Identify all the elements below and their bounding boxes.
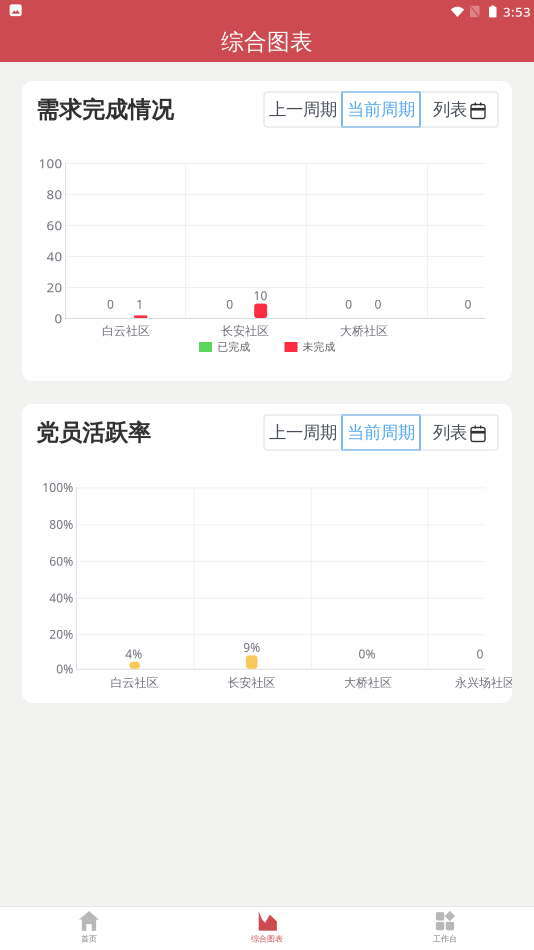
staticText: 首页 [81,934,97,944]
staticText: 当前周期 [347,422,415,443]
staticText: 0% [56,661,73,677]
button[interactable]: 首页 [0,907,178,950]
staticText: 20 [46,278,62,296]
staticText: 上一周期 [269,422,337,443]
button[interactable]: 综合图表 [178,907,356,950]
staticText: 100% [42,479,73,495]
staticText: 1 [136,296,143,312]
staticText: 0 [464,296,471,312]
staticText: 上一周期 [269,99,337,120]
staticText: 40% [49,590,73,606]
staticText: 大桥社区 [344,675,392,690]
staticText: 白云社区 [102,324,150,338]
staticText: 0 [374,296,381,312]
staticText: 工作台 [433,934,457,944]
staticText: 综合图表 [221,28,313,56]
staticText: 60% [49,553,73,569]
staticText: 80% [49,516,73,532]
staticText: 0 [54,309,62,327]
staticText: 党员活跃率 [36,419,151,447]
staticText: 0 [107,296,114,312]
staticText: 已完成 [217,340,250,353]
staticText: 10 [253,288,267,304]
staticText: 白云社区 [110,675,158,690]
staticText: 20% [49,626,73,642]
staticText: 未完成 [302,340,335,353]
staticText: 80 [46,185,62,203]
button[interactable]: 上一周期 [264,415,498,450]
button[interactable]: 工作台 [356,907,534,950]
staticText: 0 [476,646,483,662]
staticText: 0 [345,296,352,312]
staticText: 长安社区 [227,675,275,690]
staticText: 100 [38,154,62,172]
staticText: 当前周期 [347,99,415,120]
staticText: 列表 [433,422,467,443]
staticText: 列表 [433,99,467,120]
staticText: 长安社区 [221,324,269,338]
staticText: 9% [243,639,260,655]
staticText: 综合图表 [251,934,283,944]
button[interactable]: 上一周期 [264,92,498,127]
staticText: 0% [358,646,375,662]
staticText: 60 [46,216,62,234]
staticText: 需求完成情况 [36,96,174,124]
staticText: 大桥社区 [340,324,388,338]
staticText: 永兴场社区 [455,675,515,690]
staticText: 3:53 [503,3,531,20]
staticText: 40 [46,247,62,265]
staticText: 0 [226,296,233,312]
staticText: 4% [125,646,142,662]
